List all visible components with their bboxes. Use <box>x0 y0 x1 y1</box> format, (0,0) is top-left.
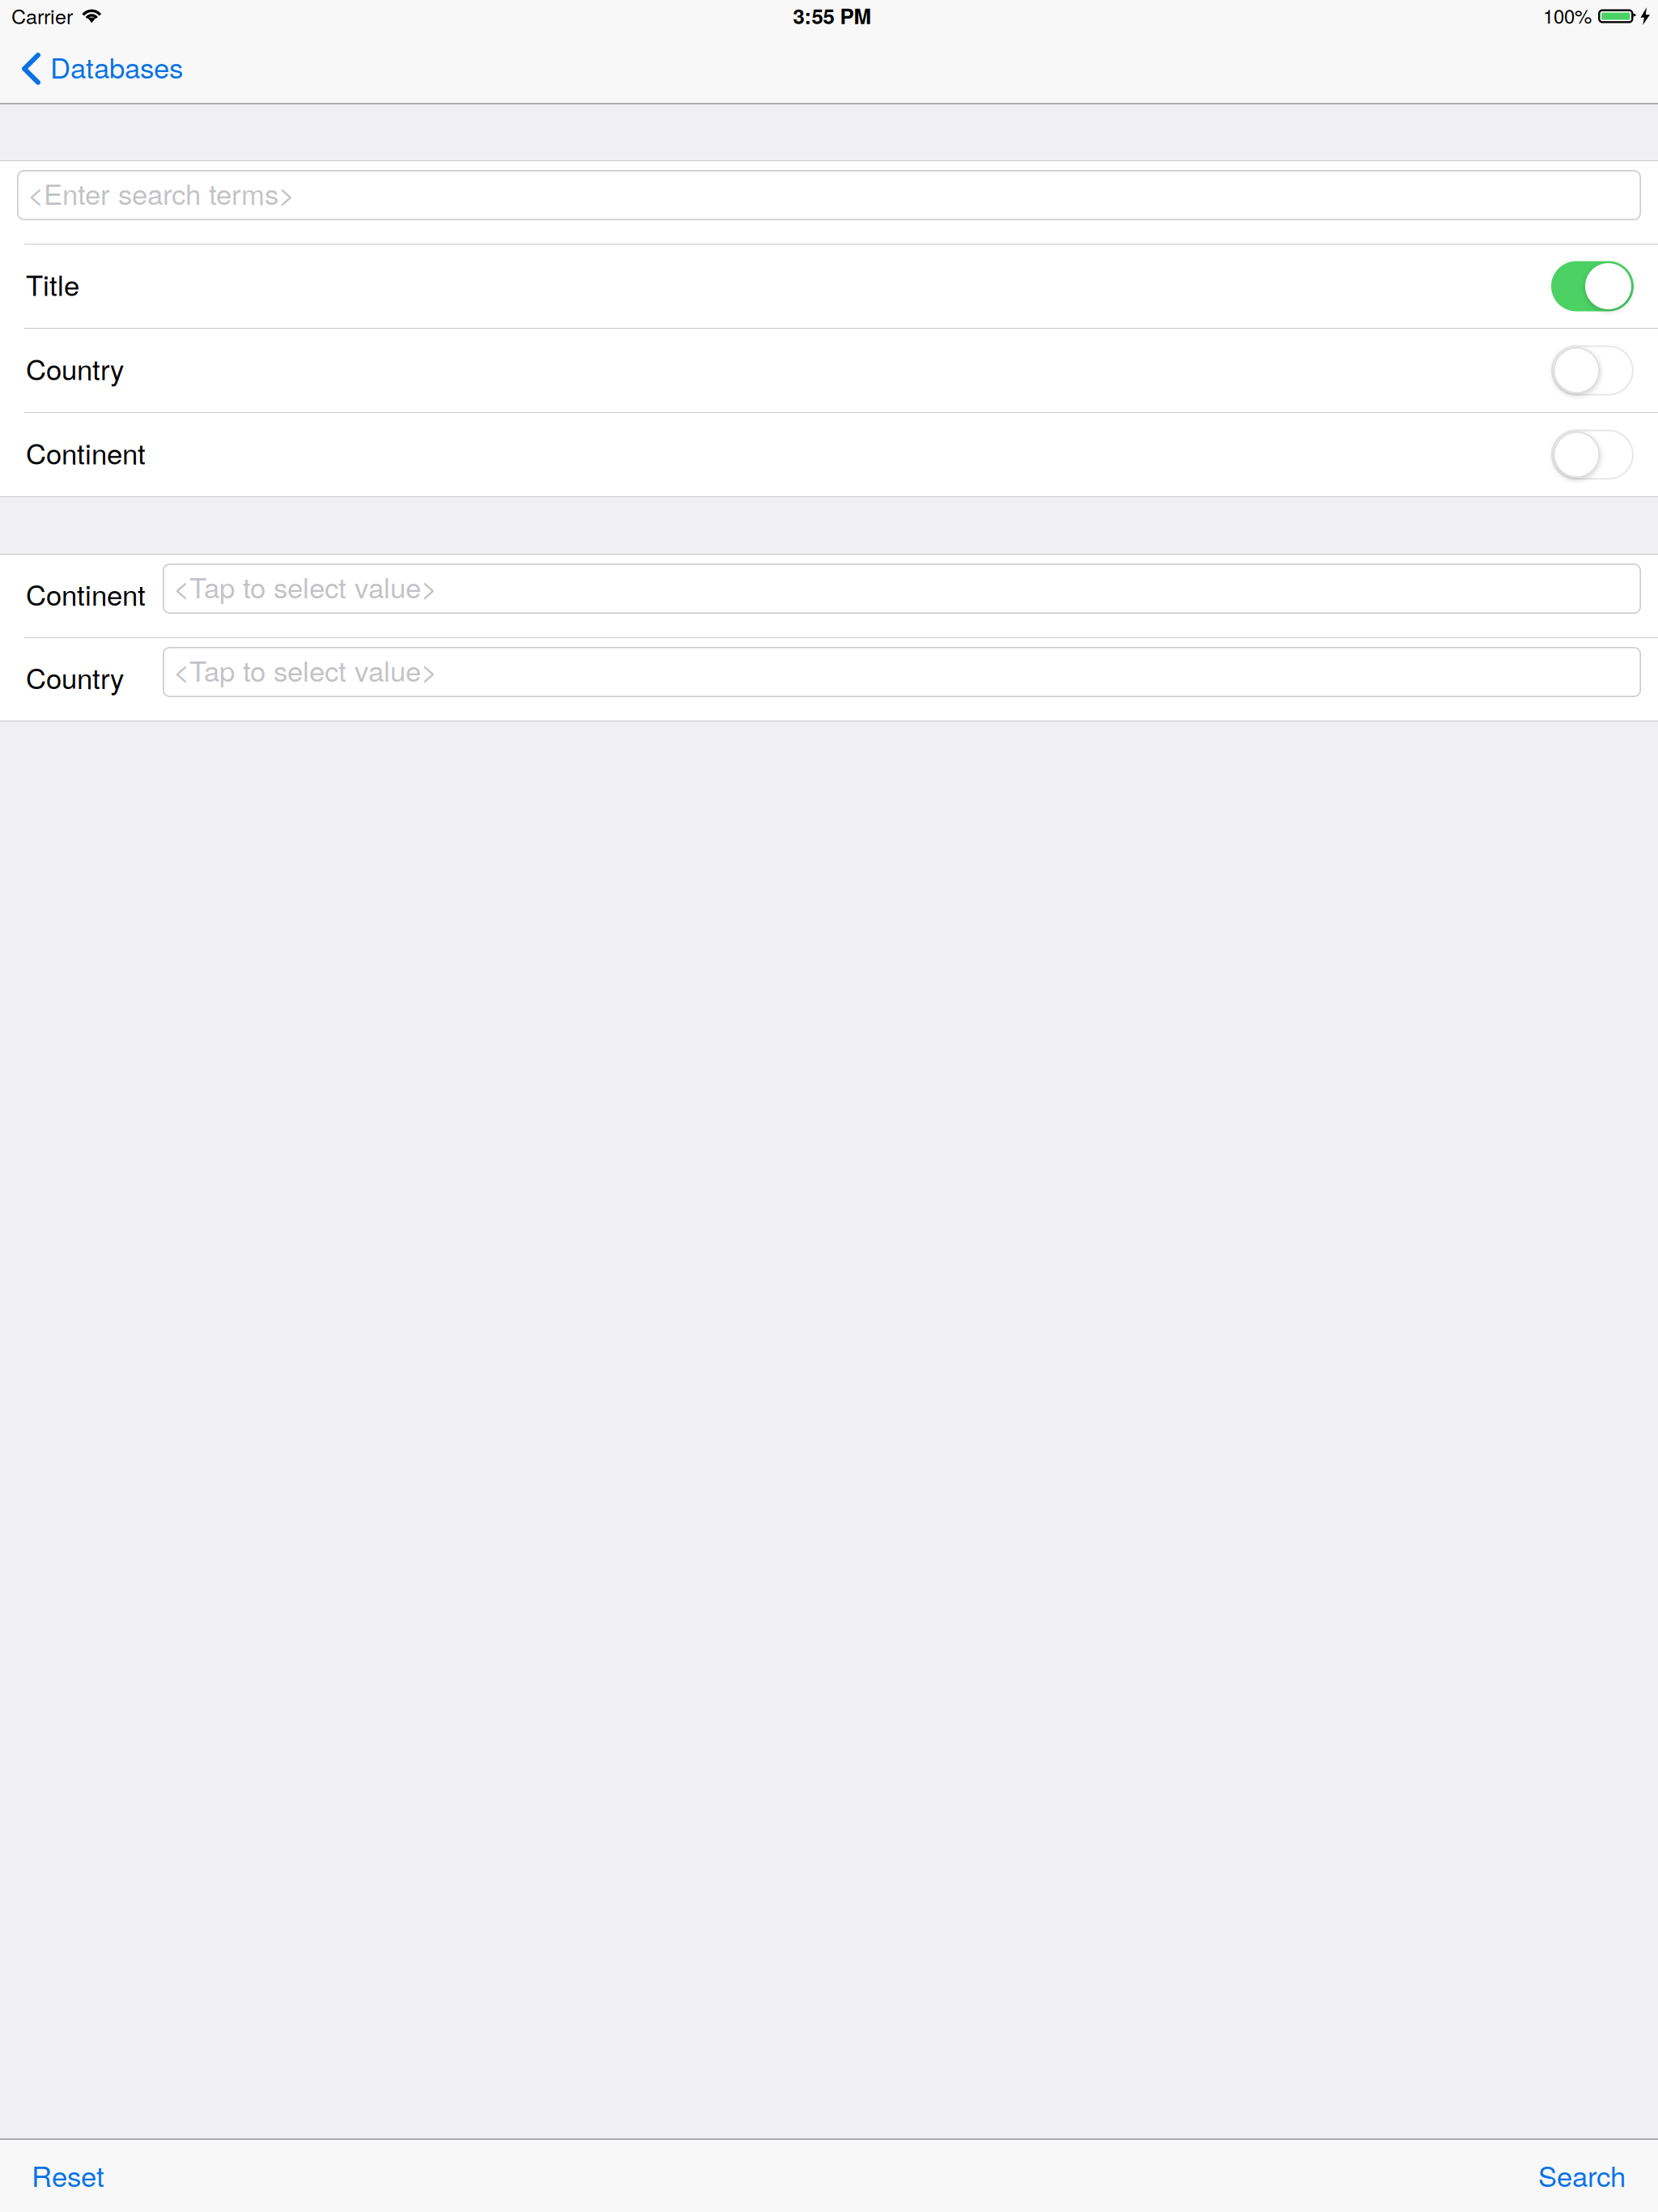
staticText: Carrier <box>11 1 73 30</box>
staticText: Continent <box>26 573 146 614</box>
staticText: 3:55 PM <box>793 0 872 30</box>
staticText: Reset <box>32 2155 104 2195</box>
button[interactable]: Continent <box>0 555 1658 637</box>
button[interactable]: Databases <box>0 32 183 103</box>
button[interactable]: Reset <box>32 2140 104 2212</box>
staticText: Databases <box>50 46 183 86</box>
button[interactable]: Search <box>1538 2140 1626 2212</box>
staticText: <Tap to select value> <box>173 650 437 690</box>
staticText: Continent <box>26 432 146 472</box>
button[interactable]: Continent <box>0 413 1658 496</box>
staticText: <Tap to select value> <box>173 566 437 606</box>
button[interactable]: <Enter search terms> <box>0 161 1658 244</box>
staticText: Title <box>26 264 79 304</box>
button[interactable]: Title <box>0 245 1658 328</box>
staticText: <Enter search terms> <box>28 173 295 213</box>
button[interactable]: Country <box>0 638 1658 721</box>
staticText: Search <box>1538 2155 1626 2195</box>
staticText: Country <box>26 657 124 697</box>
staticText: 100% <box>1543 1 1592 29</box>
staticText: Country <box>26 348 124 388</box>
button[interactable]: Country <box>0 329 1658 412</box>
